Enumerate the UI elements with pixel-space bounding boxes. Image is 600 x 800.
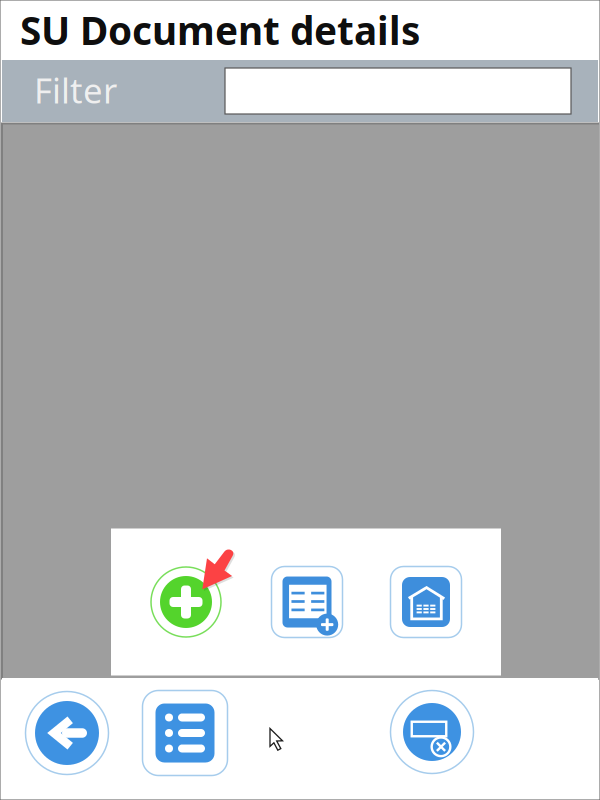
button[interactable]: Warehouse: [386, 562, 466, 642]
button[interactable]: New document: [267, 562, 347, 642]
button[interactable]: Add: [143, 559, 229, 645]
staticText: SU Document details: [20, 4, 420, 56]
button[interactable]: Cancel: [386, 686, 478, 778]
staticText: Filter: [34, 67, 117, 113]
button[interactable]: List: [139, 687, 231, 779]
button[interactable]: Back: [21, 687, 113, 779]
